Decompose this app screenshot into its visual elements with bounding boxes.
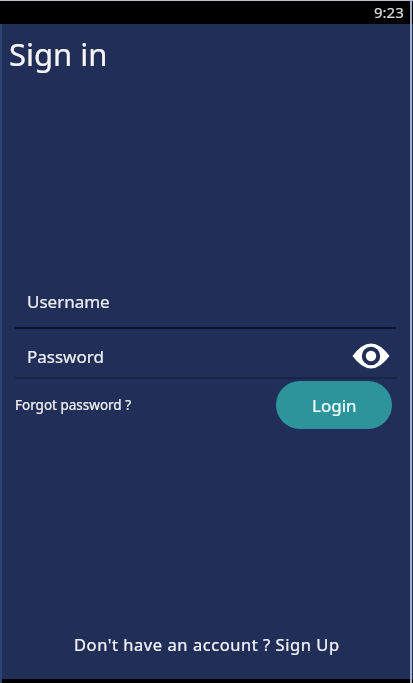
staticText: Login [312,394,357,417]
staticText: Password [27,345,104,368]
button[interactable]: Don't have an account ? Sign Up [74,633,340,655]
staticText: Username [27,290,110,313]
button[interactable]: Forgot password ? [15,396,132,414]
button[interactable]: Login [276,381,392,429]
button[interactable]: Password [15,334,397,378]
staticText: 9:23 [374,2,404,22]
staticText: Sign in [9,33,108,75]
